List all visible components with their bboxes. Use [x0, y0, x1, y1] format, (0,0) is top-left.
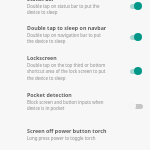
staticText: Double tap on the top third or bottom sh… [27, 62, 106, 82]
staticText: Double tap on navigation bar to put the … [27, 32, 101, 45]
button[interactable]: Lockscreen [27, 54, 127, 81]
button[interactable]: Lockscreen toggle [127, 65, 145, 77]
staticText: Lockscreen [27, 54, 57, 61]
button[interactable]: Pocket detection toggle [127, 100, 145, 112]
staticText: Double tap on status bar to put the devi… [27, 3, 100, 16]
staticText: Block screen and button inputs when devi… [27, 99, 104, 112]
staticText: Pocket detection [27, 91, 72, 98]
button[interactable]: Status bar toggle [127, 0, 145, 12]
button[interactable]: Double tap to sleep on navbar toggle [127, 31, 145, 43]
staticText: Status bar [27, 0, 55, 2]
staticText: Double tap to sleep on navbar [27, 24, 107, 31]
button[interactable]: Status bar [27, 0, 127, 15]
button[interactable]: Double tap to sleep on navbar [27, 24, 127, 44]
staticText: Screen off power button torch [27, 127, 107, 134]
button[interactable]: Pocket detection [27, 91, 127, 111]
staticText: Long press power to toggle torch [27, 135, 96, 141]
button[interactable]: Screen off power button torch [27, 127, 127, 140]
